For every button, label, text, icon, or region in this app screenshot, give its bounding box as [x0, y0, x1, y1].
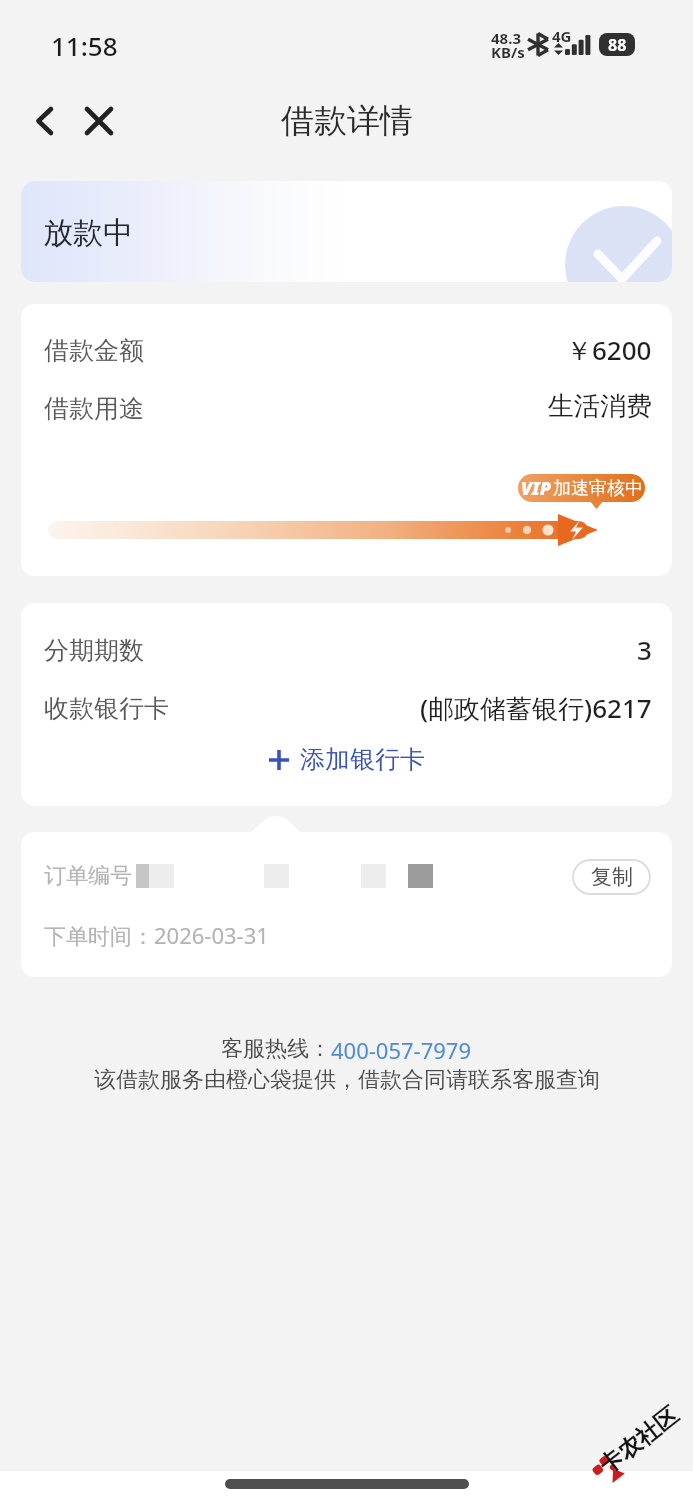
staticText: 4G: [552, 26, 572, 46]
staticText: VIP: [521, 476, 551, 501]
button[interactable]: Close: [70, 92, 128, 150]
staticText: 生活消费: [548, 390, 652, 423]
staticText: 客服热线：: [221, 1035, 331, 1063]
staticText: 该借款服务由橙心袋提供，借款合同请联系客服查询: [94, 1066, 600, 1094]
staticText: 3: [637, 632, 652, 667]
staticText: (邮政储蓄银行)6217: [420, 690, 652, 726]
staticText: 加速审核中: [553, 477, 643, 500]
staticText: 下单时间：2026-03-31: [44, 920, 269, 950]
staticText: 借款金额: [44, 335, 144, 366]
staticText: 添加银行卡: [300, 744, 425, 775]
staticText: 放款中: [43, 214, 133, 252]
staticText: 400-057-7979: [331, 1035, 472, 1065]
staticText: 借款用途: [44, 393, 144, 424]
staticText: 11:58: [51, 28, 118, 63]
staticText: KB/s: [491, 42, 525, 62]
staticText: 88: [608, 34, 627, 56]
button[interactable]: 复制: [572, 859, 651, 895]
staticText: 订单编号：: [44, 862, 154, 890]
staticText: 分期期数: [44, 635, 144, 666]
staticText: 48.3: [491, 28, 521, 48]
staticText: 收款银行卡: [44, 693, 169, 724]
staticText: ￥6200: [566, 332, 652, 368]
staticText: 卡农社区: [594, 1401, 684, 1480]
button[interactable]: Back: [16, 92, 74, 150]
button[interactable]: 添加银行卡: [255, 738, 439, 781]
staticText: 复制: [591, 864, 633, 890]
staticText: 借款详情: [281, 100, 413, 142]
